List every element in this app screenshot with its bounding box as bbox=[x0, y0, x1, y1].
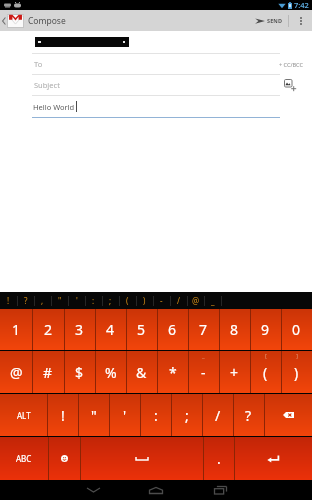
staticText: + bbox=[230, 363, 239, 382]
button[interactable]: : bbox=[85, 292, 102, 309]
button[interactable]: 6 bbox=[157, 309, 188, 350]
button[interactable]: ! bbox=[47, 394, 78, 436]
button[interactable]: Navigate up bbox=[0, 10, 66, 31]
button[interactable]: ? bbox=[17, 292, 34, 309]
button[interactable]: Subject bbox=[0, 75, 312, 95]
staticText: ABC bbox=[16, 453, 32, 464]
staticText: 1 bbox=[12, 320, 21, 339]
staticText: ' bbox=[123, 406, 127, 425]
staticText: ] bbox=[296, 352, 298, 360]
button[interactable]: / bbox=[170, 292, 187, 309]
staticText: ) bbox=[143, 295, 146, 306]
button[interactable]: 8 bbox=[219, 309, 250, 350]
button[interactable]: ! bbox=[0, 292, 17, 309]
staticText: ? bbox=[245, 406, 252, 425]
button[interactable]: 4 bbox=[95, 309, 126, 350]
button[interactable]: 7 bbox=[188, 309, 219, 350]
button[interactable]: $ bbox=[64, 351, 95, 393]
staticText: 4 bbox=[106, 320, 115, 339]
button[interactable]: 0 bbox=[281, 309, 312, 350]
staticText: . bbox=[217, 449, 221, 468]
other: Delete bbox=[283, 412, 294, 418]
button[interactable]: Enter bbox=[234, 437, 312, 480]
button[interactable]: 9 bbox=[250, 309, 281, 350]
staticText: _ bbox=[211, 295, 215, 306]
button[interactable]: ; bbox=[171, 394, 202, 436]
button[interactable]: * bbox=[157, 351, 188, 393]
button[interactable]: Attach photo bbox=[284, 79, 296, 91]
staticText: Subject bbox=[34, 80, 60, 90]
staticText: Hello World bbox=[33, 102, 75, 112]
staticText: 8 bbox=[230, 320, 239, 339]
button[interactable]: ALT bbox=[0, 394, 47, 436]
button[interactable]: @ bbox=[0, 351, 32, 393]
button[interactable]: _ bbox=[204, 292, 221, 309]
staticText: , bbox=[41, 295, 44, 306]
other: Navigate up bbox=[2, 17, 6, 25]
button[interactable]: To bbox=[0, 54, 312, 74]
button[interactable]: More options bbox=[289, 10, 312, 31]
button[interactable]: + bbox=[219, 351, 250, 393]
button[interactable]: ) bbox=[281, 351, 312, 393]
button[interactable]: / bbox=[202, 394, 233, 436]
other: Enter bbox=[267, 455, 279, 463]
staticText: 0 bbox=[292, 320, 301, 339]
button[interactable]: ' bbox=[109, 394, 140, 436]
staticText: To bbox=[34, 59, 43, 69]
staticText: _ bbox=[202, 352, 205, 360]
button[interactable]: - bbox=[153, 292, 170, 309]
staticText: - bbox=[201, 363, 206, 382]
button[interactable]: 3 bbox=[64, 309, 95, 350]
other: Space bbox=[136, 457, 148, 460]
staticText: @ bbox=[192, 295, 200, 306]
staticText: / bbox=[215, 406, 221, 425]
button[interactable]: ABC bbox=[0, 437, 48, 480]
button[interactable] bbox=[0, 31, 312, 53]
staticText: 5 bbox=[137, 320, 146, 339]
button[interactable]: - bbox=[188, 351, 219, 393]
staticText: [ bbox=[265, 352, 267, 360]
button[interactable]: Emoji bbox=[48, 437, 80, 480]
button[interactable]: Delete bbox=[264, 394, 312, 436]
staticText: ( bbox=[126, 295, 129, 306]
button[interactable]: Hide keyboard bbox=[73, 480, 113, 500]
button[interactable]: ' bbox=[68, 292, 85, 309]
button[interactable]: & bbox=[126, 351, 157, 393]
staticText: ' bbox=[76, 295, 78, 306]
button[interactable]: # bbox=[32, 351, 64, 393]
button[interactable]: , bbox=[34, 292, 51, 309]
staticText: : bbox=[154, 406, 158, 425]
button[interactable]: 1 bbox=[0, 309, 32, 350]
button[interactable]: Space bbox=[80, 437, 203, 480]
staticText: 2 bbox=[44, 320, 53, 339]
other: Emoji bbox=[61, 455, 68, 462]
button[interactable]: Hello World bbox=[0, 96, 312, 117]
button[interactable]: : bbox=[140, 394, 171, 436]
button[interactable]: " bbox=[51, 292, 68, 309]
button[interactable]: ( bbox=[250, 351, 281, 393]
button[interactable]: ( bbox=[119, 292, 136, 309]
button[interactable]: ) bbox=[136, 292, 153, 309]
staticText: Compose bbox=[28, 15, 66, 27]
button[interactable]: ; bbox=[102, 292, 119, 309]
staticText: " bbox=[58, 295, 62, 306]
button[interactable]: % bbox=[95, 351, 126, 393]
staticText: ALT bbox=[17, 410, 31, 421]
staticText: " bbox=[91, 406, 97, 425]
button[interactable]: 2 bbox=[32, 309, 64, 350]
staticText: & bbox=[136, 363, 147, 382]
button[interactable]: " bbox=[78, 394, 109, 436]
button[interactable]: 5 bbox=[126, 309, 157, 350]
button[interactable]: SEND bbox=[251, 10, 288, 31]
staticText: / bbox=[177, 295, 180, 306]
button[interactable]: Recent apps bbox=[200, 480, 240, 500]
staticText: ; bbox=[109, 295, 112, 306]
button[interactable]: Home bbox=[136, 480, 176, 500]
staticText: ; bbox=[185, 406, 189, 425]
button[interactable]: @ bbox=[187, 292, 204, 309]
other: Attach photo bbox=[284, 79, 296, 91]
button[interactable]: . bbox=[203, 437, 234, 480]
staticText: 7:42 bbox=[294, 0, 309, 10]
staticText: $ bbox=[75, 363, 84, 382]
button[interactable]: ? bbox=[233, 394, 264, 436]
